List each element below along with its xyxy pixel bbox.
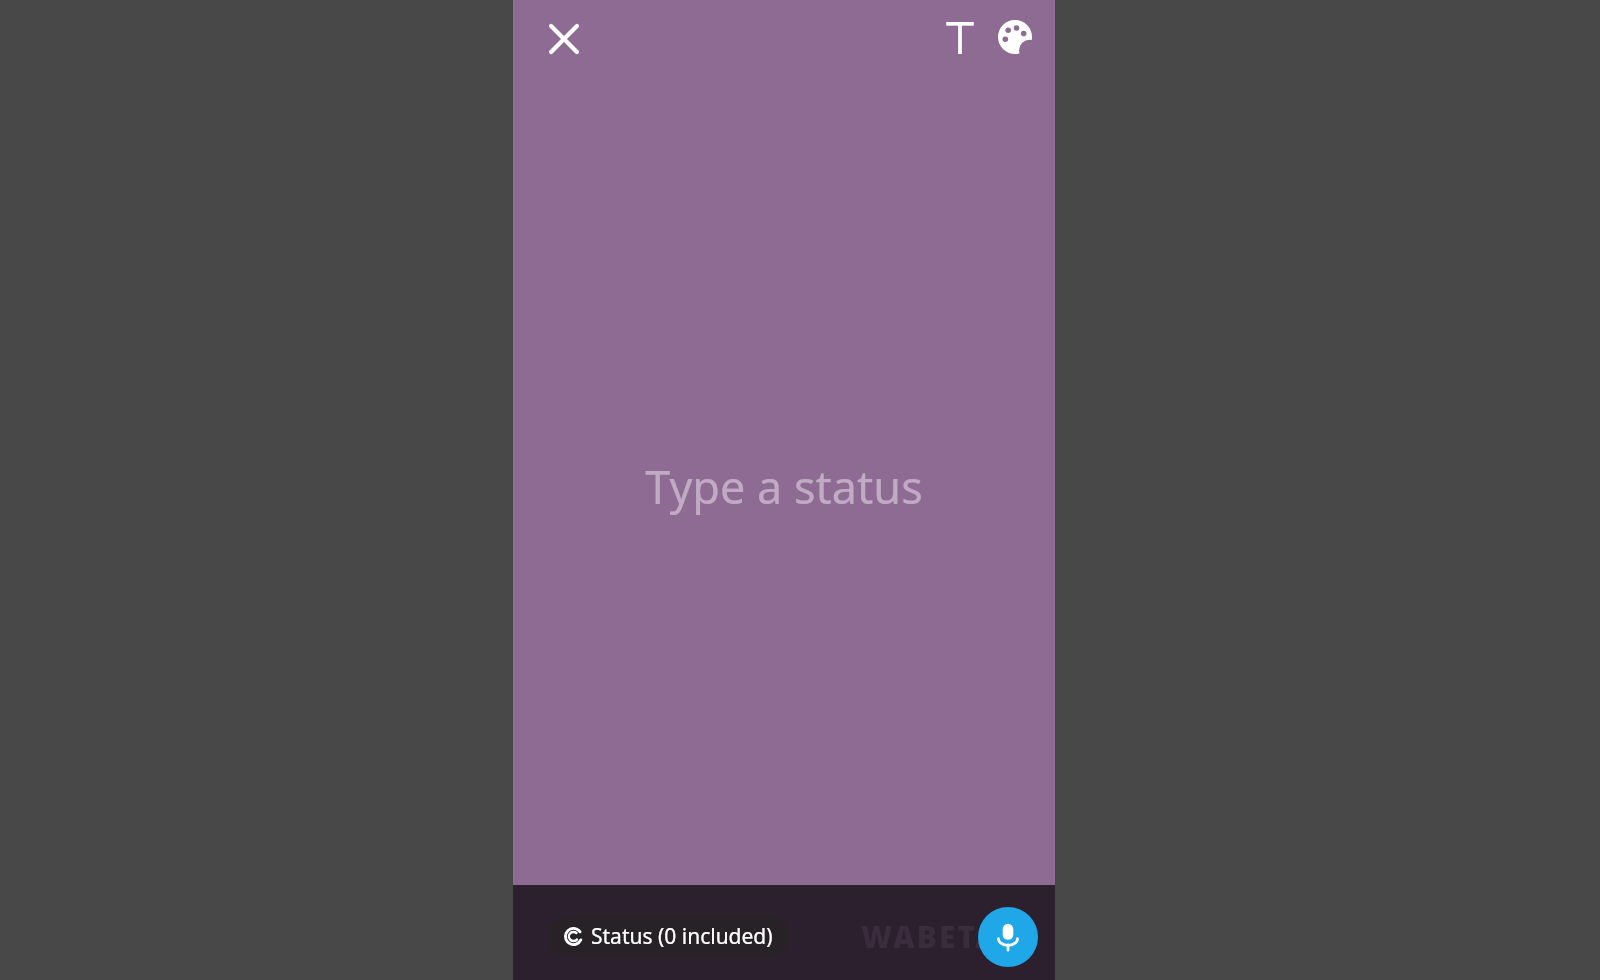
button[interactable]: Close bbox=[527, 2, 601, 76]
button[interactable]: Record voice status bbox=[978, 907, 1038, 967]
button[interactable]: Status (0 included) bbox=[548, 915, 789, 957]
staticText: WABETA bbox=[861, 916, 999, 957]
button[interactable]: Background colour bbox=[978, 0, 1052, 74]
staticText: Status (0 included) bbox=[591, 922, 773, 951]
button[interactable]: Text style bbox=[923, 1, 997, 75]
staticText: Type a status bbox=[645, 456, 923, 517]
